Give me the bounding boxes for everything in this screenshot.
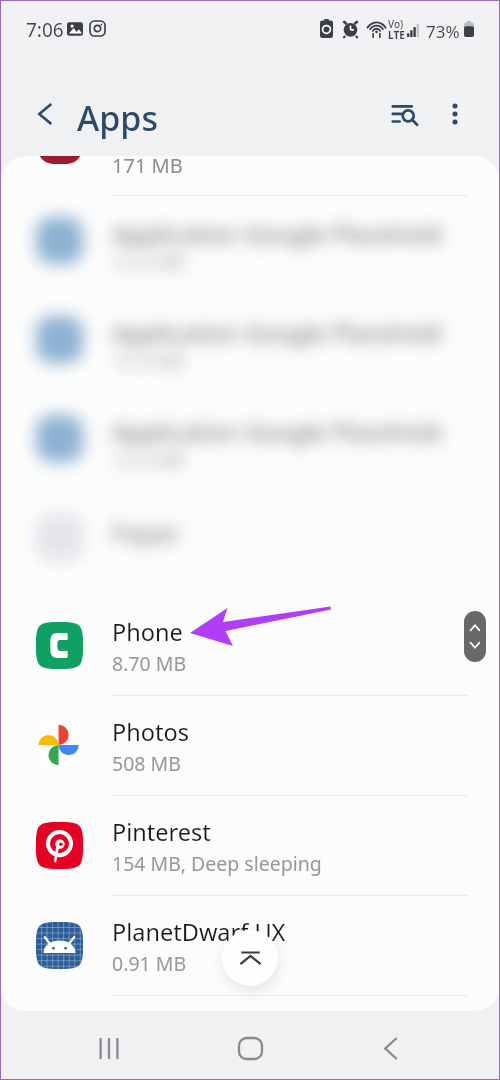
- staticText: PlanetDwarf UX: [112, 916, 286, 948]
- button[interactable]: Photos: [0, 696, 500, 796]
- staticText: 12.4 MB: [112, 447, 185, 473]
- staticText: Pinterest: [112, 816, 211, 848]
- staticText: 154 MB, Deep sleeping: [112, 850, 322, 877]
- button[interactable]: More options: [432, 91, 478, 137]
- button[interactable]: Search: [382, 91, 428, 137]
- staticText: Application Google Placehold: [112, 415, 442, 448]
- staticText: Application Google Placehold: [112, 316, 442, 349]
- staticText: 7:06: [26, 17, 64, 43]
- button[interactable]: Scroll to top: [222, 930, 278, 986]
- staticText: Apps: [77, 95, 158, 141]
- staticText: Phone: [112, 616, 183, 648]
- staticText: Paper: [112, 516, 181, 550]
- staticText: 12.4 MB: [112, 348, 185, 374]
- staticText: Application Google Placehold: [112, 217, 442, 250]
- staticText: 508 MB: [112, 750, 181, 777]
- button[interactable]: Recents: [77, 1016, 141, 1080]
- staticText: 0.91 MB: [112, 950, 187, 977]
- button[interactable]: Pinterest: [0, 796, 500, 896]
- button[interactable]: PlanetDwarf UX: [0, 896, 500, 996]
- button[interactable]: Scroll: [464, 611, 486, 662]
- button[interactable]: Back: [359, 1016, 423, 1080]
- staticText: 73%: [426, 20, 460, 43]
- staticText: Vo): [388, 17, 404, 31]
- staticText: Photos: [112, 716, 189, 748]
- staticText: 12.4 MB: [112, 249, 185, 275]
- button[interactable]: Home: [218, 1016, 282, 1080]
- staticText: 171 MB: [112, 156, 183, 179]
- button[interactable]: Phone: [0, 596, 500, 696]
- staticText: LTE: [388, 28, 405, 42]
- staticText: 8.70 MB: [112, 650, 187, 677]
- button[interactable]: Back: [23, 91, 69, 137]
